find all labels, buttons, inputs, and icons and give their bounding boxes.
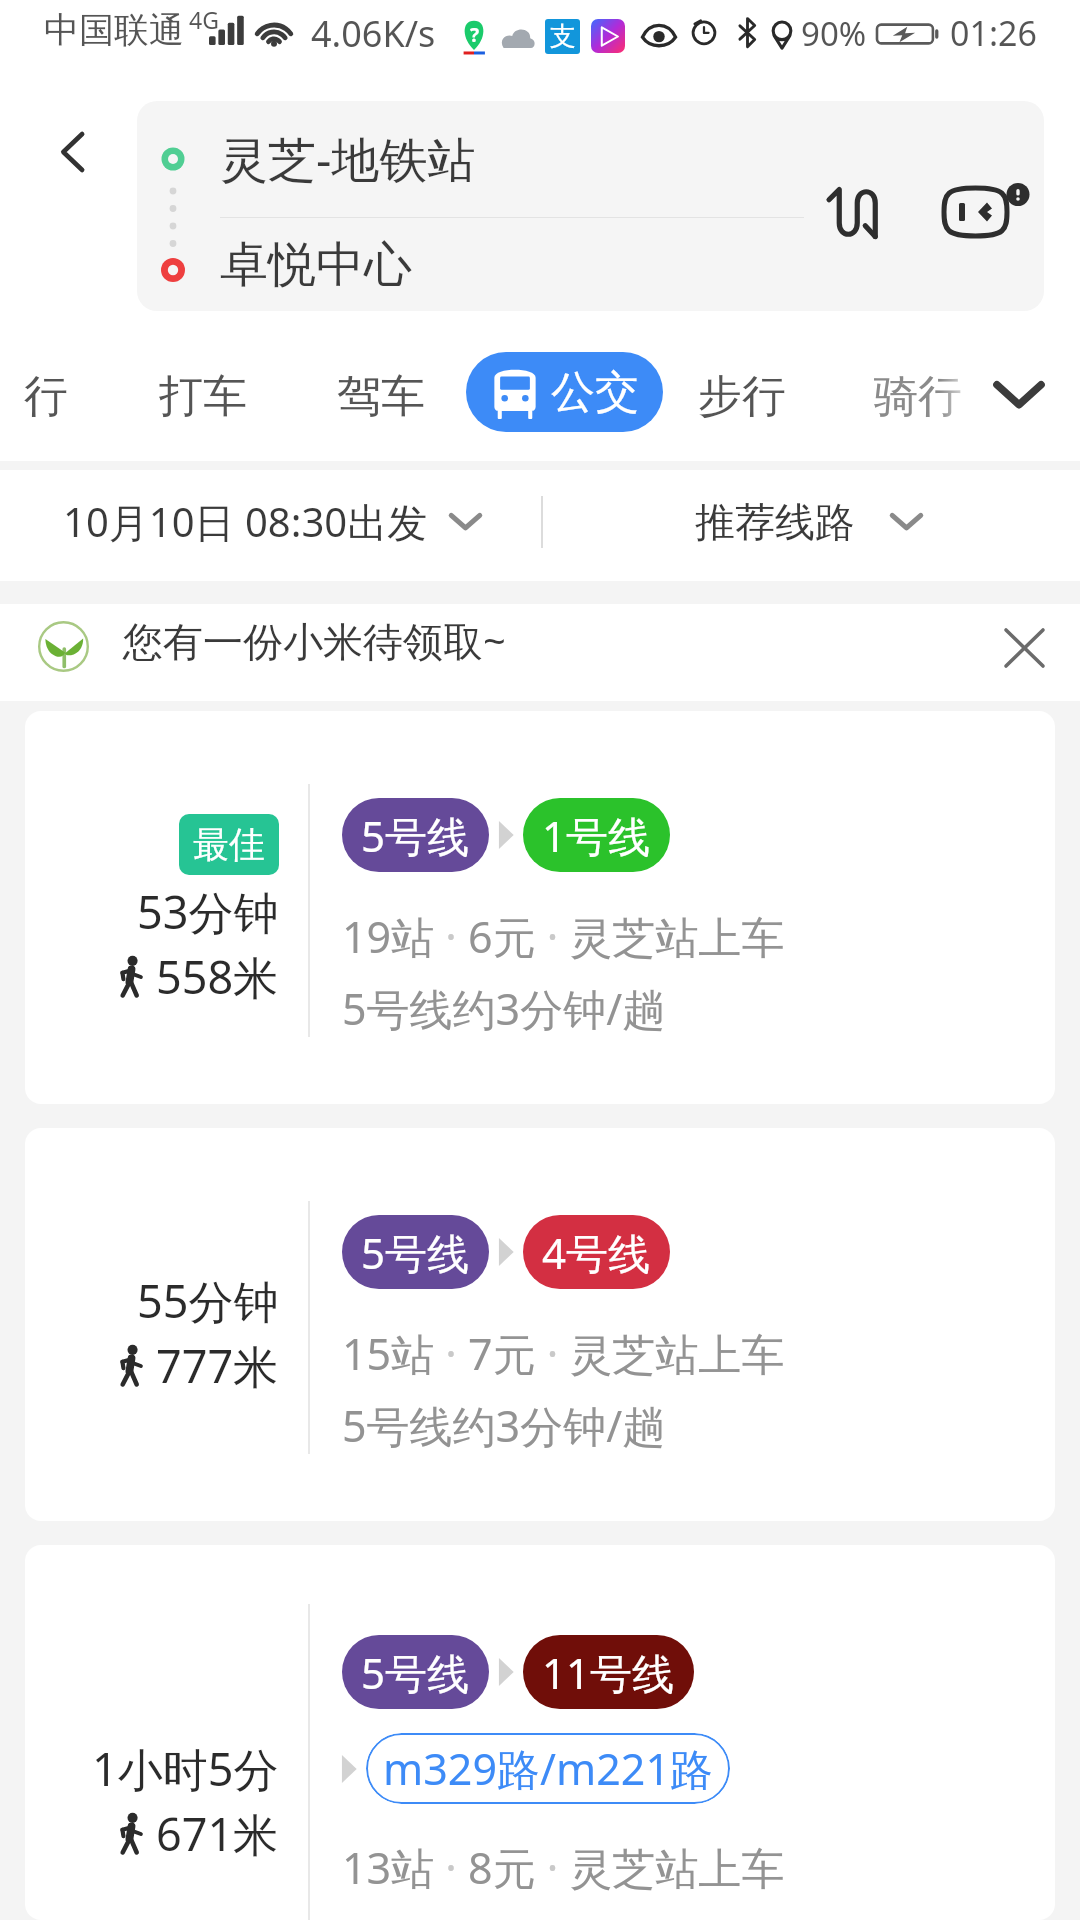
- staticText: 1号线: [542, 807, 651, 864]
- staticText: 5号线约3分钟/趟: [342, 979, 666, 1038]
- staticText: 支: [550, 20, 576, 53]
- button[interactable]: More travel modes: [972, 340, 1066, 461]
- staticText: 558米: [156, 946, 279, 1007]
- staticText: 15站 · 7元 · 灵芝站上车: [342, 1324, 785, 1383]
- staticText: 777米: [156, 1335, 279, 1396]
- staticText: 打车: [159, 369, 247, 424]
- staticText: 53分钟: [137, 881, 279, 942]
- button[interactable]: 行: [0, 340, 92, 461]
- staticText: 最佳: [193, 822, 265, 867]
- button[interactable]: 骑行: [843, 340, 993, 461]
- button[interactable]: 打车: [123, 340, 283, 461]
- staticText: 推荐线路: [695, 497, 855, 547]
- staticText: 5号线: [361, 807, 470, 864]
- button[interactable]: 驾车: [301, 340, 461, 461]
- button[interactable]: 55分钟: [25, 1128, 1055, 1521]
- staticText: 11号线: [542, 1644, 675, 1701]
- staticText: 13站 · 8元 · 灵芝站上车: [342, 1838, 785, 1897]
- staticText: m329路/m221路: [383, 1739, 713, 1798]
- staticText: 10月10日 08:30出发: [63, 494, 428, 549]
- button[interactable]: Route preferences: [916, 101, 1044, 311]
- staticText: 55分钟: [137, 1270, 279, 1331]
- staticText: 19站 · 6元 · 灵芝站上车: [342, 907, 785, 966]
- staticText: 步行: [698, 369, 786, 424]
- staticText: 4.06K/s: [311, 9, 436, 58]
- staticText: 4号线: [542, 1224, 651, 1281]
- staticText: 5号线: [361, 1224, 470, 1281]
- staticText: 驾车: [337, 369, 425, 424]
- staticText: 01:26: [950, 10, 1037, 56]
- staticText: 灵芝-地铁站: [220, 126, 476, 192]
- button[interactable]: Swap start and end: [816, 101, 916, 311]
- button[interactable]: 最佳: [25, 711, 1055, 1104]
- staticText: 5号线: [361, 1644, 470, 1701]
- button[interactable]: 10月10日 08:30出发: [0, 466, 489, 577]
- button[interactable]: 1小时5分: [25, 1545, 1055, 1920]
- staticText: 5号线约3分钟/趟: [342, 1396, 666, 1455]
- button[interactable]: Close promotion: [986, 610, 1062, 686]
- staticText: 您有一份小米待领取~: [123, 613, 506, 668]
- button[interactable]: 推荐线路: [695, 466, 1080, 577]
- staticText: 4G: [189, 4, 219, 35]
- staticText: 90%: [801, 11, 867, 56]
- staticText: 1小时5分: [92, 1738, 279, 1799]
- staticText: 公交: [551, 365, 639, 420]
- staticText: 骑行: [874, 369, 962, 424]
- button[interactable]: 公交: [466, 352, 663, 432]
- staticText: 卓悦中心: [220, 235, 412, 295]
- staticText: ?: [470, 22, 480, 48]
- staticText: 671米: [156, 1803, 279, 1864]
- button[interactable]: Back: [0, 62, 137, 340]
- button[interactable]: 步行: [662, 340, 822, 461]
- staticText: 行: [24, 369, 68, 424]
- staticText: 中国联通: [44, 8, 184, 52]
